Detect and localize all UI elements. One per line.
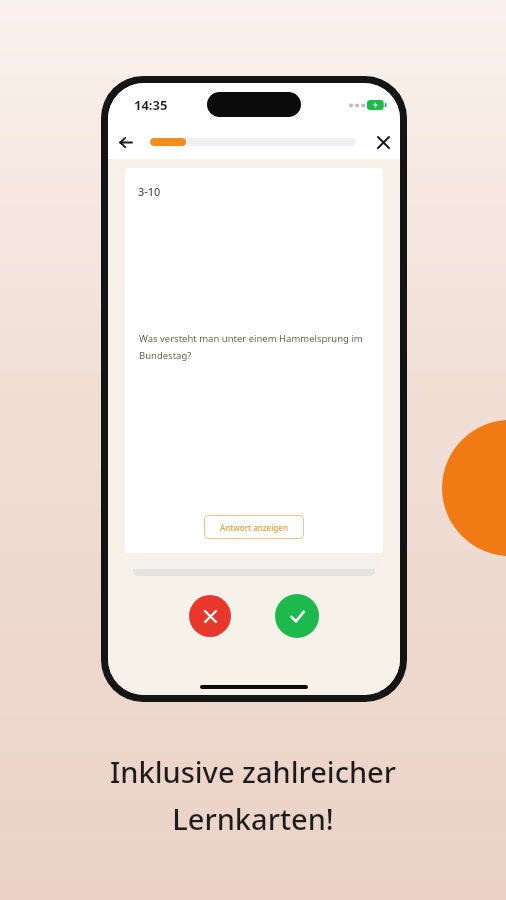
staticText: 14:35 bbox=[134, 96, 168, 114]
button[interactable]: Weiter bbox=[442, 420, 506, 556]
button[interactable]: Falsch bbox=[189, 595, 231, 637]
button[interactable]: 3-10 bbox=[125, 168, 383, 553]
staticText: Lernkarten! bbox=[172, 799, 334, 838]
staticText: 3-10 bbox=[138, 184, 161, 199]
staticText: Inklusive zahlreicher bbox=[110, 752, 396, 791]
button[interactable]: Antwort anzeigen bbox=[204, 515, 304, 539]
staticText: Antwort anzeigen bbox=[220, 522, 288, 533]
button[interactable]: Schließen bbox=[366, 125, 400, 159]
button[interactable]: Zurück bbox=[108, 125, 142, 159]
button[interactable] bbox=[150, 138, 356, 146]
button[interactable]: Richtig bbox=[275, 594, 319, 638]
staticText: Was versteht man unter einem Hammelsprun… bbox=[139, 332, 369, 361]
